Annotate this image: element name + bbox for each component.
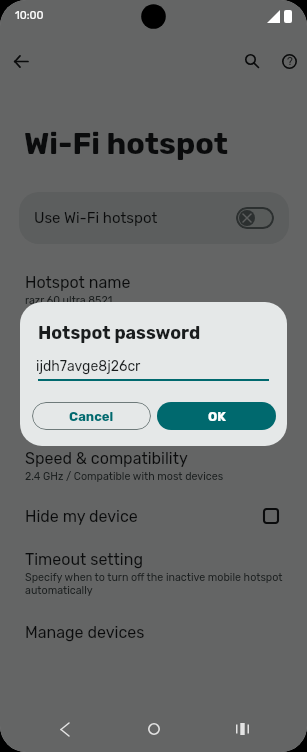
staticText: 10:00 <box>15 9 44 22</box>
staticText: razr 60 ultra 8521 <box>25 294 113 307</box>
staticText: Speed & compatibility <box>25 449 188 468</box>
staticText: Hotspot password <box>25 331 161 350</box>
staticText: Timeout setting <box>25 550 143 569</box>
button[interactable]: Recent apps <box>219 706 265 752</box>
button[interactable]: Back <box>42 706 88 752</box>
staticText: ijdh7avge8j26cr <box>36 358 141 375</box>
staticText: 2.4 GHz / Compatible with most devices <box>25 470 224 483</box>
button[interactable]: Navigate up <box>3 43 39 79</box>
button[interactable]: Use Wi-Fi hotspot <box>236 207 274 229</box>
button[interactable]: Security <box>0 383 307 430</box>
button[interactable]: Search <box>234 43 270 79</box>
button[interactable]: Hide my device <box>0 502 307 530</box>
button[interactable]: Cancel <box>32 402 151 430</box>
staticText: Wi-Fi hotspot <box>24 125 228 161</box>
button[interactable]: OK <box>157 402 276 430</box>
button[interactable]: Speed & compatibility <box>0 442 307 489</box>
button[interactable]: Use Wi-Fi hotspot <box>19 192 289 244</box>
button[interactable]: Help <box>271 43 307 79</box>
staticText: Hide my device <box>25 507 138 526</box>
staticText: •••••••••••• <box>25 352 74 365</box>
staticText: Specify when to turn off the inactive mo… <box>25 571 293 597</box>
button[interactable]: Hotspot password <box>0 324 307 371</box>
button[interactable]: Manage devices <box>0 618 307 646</box>
staticText: Hotspot name <box>25 273 131 292</box>
staticText: OK <box>208 409 226 424</box>
button[interactable]: Home <box>131 706 177 752</box>
staticText: ? <box>287 55 293 68</box>
button[interactable]: Hotspot name <box>0 266 307 313</box>
staticText: Hotspot password <box>38 322 201 343</box>
staticText: WPA2-Personal <box>25 411 102 424</box>
staticText: Manage devices <box>25 623 145 642</box>
staticText: Cancel <box>69 409 114 424</box>
staticText: Security <box>25 390 88 409</box>
staticText: Use Wi-Fi hotspot <box>34 209 158 227</box>
button[interactable]: Timeout setting <box>0 543 307 603</box>
